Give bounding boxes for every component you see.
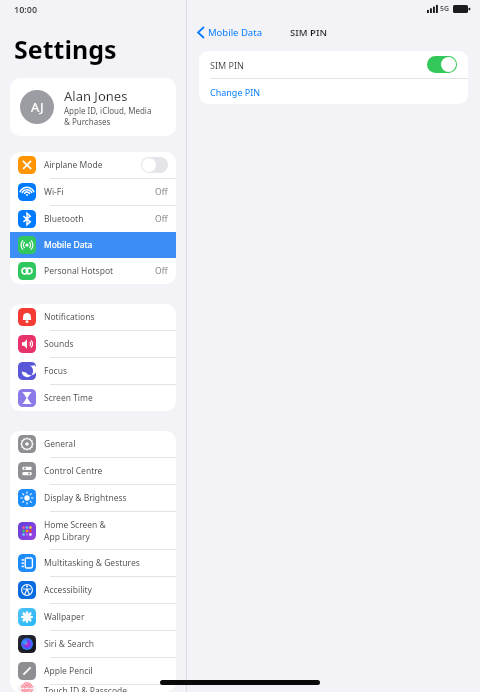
staticText: Apple ID, iCloud, Media [64,105,152,116]
button[interactable]: Change PIN [199,79,468,104]
staticText: Sounds [44,338,168,350]
button[interactable]: Notifications [10,304,176,330]
button[interactable]: Screen Time [10,385,176,411]
staticText: Focus [44,365,168,377]
staticText: Notifications [44,311,168,323]
staticText: SIM PIN [290,26,327,39]
button[interactable]: Airplane Mode toggle [141,157,168,173]
button[interactable]: AJ [10,78,176,136]
button[interactable]: SIM PIN toggle [427,56,457,73]
staticText: App Library [44,531,90,543]
staticText: Mobile Data [208,26,262,39]
button[interactable]: Sounds [10,331,176,357]
staticText: Accessibility [44,584,168,596]
button[interactable]: Bluetooth [10,206,176,232]
button[interactable]: Mobile Data [198,26,262,39]
button[interactable]: General [10,431,176,457]
staticText: Bluetooth [44,213,155,225]
staticText: Settings [14,32,117,66]
staticText: Wallpaper [44,611,168,623]
staticText: & Purchases [64,116,111,127]
staticText: Touch ID & Passcode [44,685,168,692]
staticText: Off [155,186,168,198]
button[interactable]: Accessibility [10,577,176,603]
staticText: 5G [440,4,450,14]
button[interactable]: Touch ID & Passcode [10,685,176,692]
staticText: Airplane Mode [44,159,141,171]
button[interactable]: Siri & Search [10,631,176,657]
staticText: Personal Hotspot [44,265,155,277]
staticText: 10:00 [14,3,38,15]
button[interactable]: Airplane Mode [10,152,176,178]
button[interactable]: Wallpaper [10,604,176,630]
button[interactable]: Mobile Data [10,232,176,258]
button[interactable]: Personal Hotspot [10,258,176,284]
staticText: Screen Time [44,392,168,404]
staticText: Mobile Data [44,239,168,251]
staticText: AJ [31,98,44,116]
button[interactable]: Wi-Fi [10,179,176,205]
button[interactable]: SIM PIN [199,51,468,78]
staticText: SIM PIN [210,59,427,71]
staticText: General [44,438,168,450]
staticText: Off [155,265,168,277]
staticText: Display & Brightness [44,492,168,504]
staticText: Multitasking & Gestures [44,557,168,569]
button[interactable]: Focus [10,358,176,384]
staticText: Alan Jones [64,87,128,105]
button[interactable]: Apple Pencil [10,658,176,684]
button[interactable]: Home Screen & [10,512,176,549]
button[interactable]: Multitasking & Gestures [10,550,176,576]
staticText: Change PIN [210,86,261,98]
staticText: Control Centre [44,465,168,477]
staticText: Apple Pencil [44,665,168,677]
staticText: Off [155,213,168,225]
staticText: Home Screen & [44,519,106,531]
button[interactable]: Display & Brightness [10,485,176,511]
staticText: Wi-Fi [44,186,155,198]
button[interactable]: Control Centre [10,458,176,484]
staticText: Siri & Search [44,638,168,650]
